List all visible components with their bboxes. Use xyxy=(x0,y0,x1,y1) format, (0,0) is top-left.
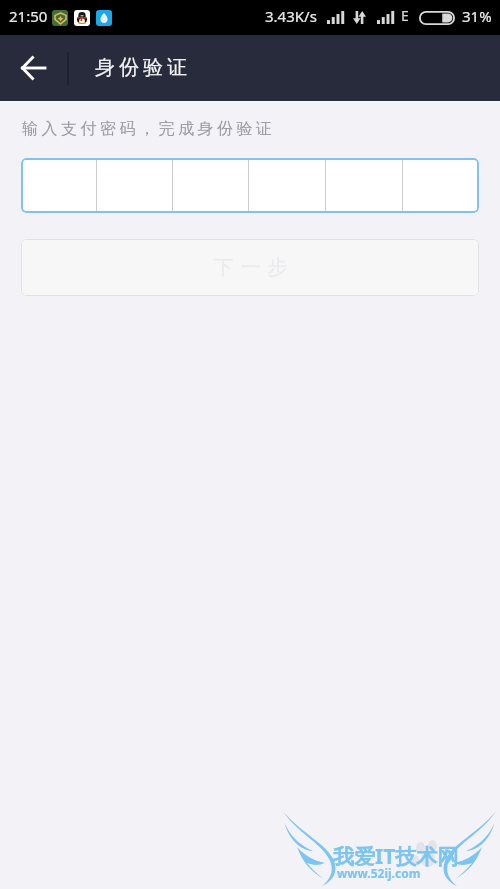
staticText: E xyxy=(401,6,409,25)
staticText: www.52ij.com xyxy=(337,865,421,881)
button[interactable] xyxy=(21,158,479,213)
staticText: 3.43K/s xyxy=(265,6,317,26)
button[interactable]: 下一步 xyxy=(21,239,479,296)
staticText: 31% xyxy=(462,6,492,26)
staticText: 下一步 xyxy=(210,255,291,280)
staticText: 21:50 xyxy=(9,6,48,26)
button[interactable]: Back xyxy=(10,45,56,91)
staticText: 身份验证 xyxy=(93,55,189,80)
staticText: 我爱IT技术网 xyxy=(333,842,459,871)
staticText: 输入支付密码，完成身份验证 xyxy=(22,119,276,139)
